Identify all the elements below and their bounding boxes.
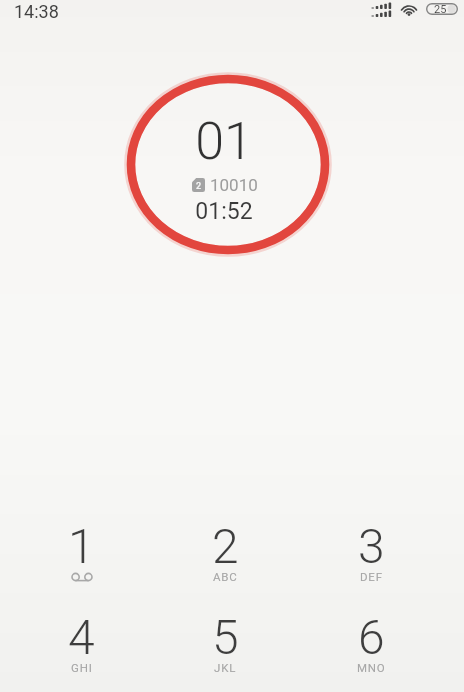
staticText: 2	[196, 181, 202, 192]
staticText: DEF	[360, 570, 383, 583]
button[interactable]: 6	[311, 601, 431, 679]
staticText: MNO	[357, 661, 386, 674]
staticText: GHI	[71, 661, 93, 674]
staticText: ABC	[213, 570, 238, 583]
staticText: 25	[434, 3, 447, 15]
staticText: 6	[358, 609, 385, 665]
staticText: 01:52	[195, 198, 253, 225]
staticText: 1	[68, 518, 95, 574]
staticText: 01	[195, 111, 253, 172]
staticText: 14:38	[14, 1, 59, 22]
staticText: 3	[358, 518, 385, 574]
button[interactable]: 2	[165, 510, 285, 588]
button[interactable]: 4	[21, 601, 141, 679]
staticText: JKL	[214, 661, 237, 674]
staticText: 4	[68, 609, 95, 665]
button[interactable]: 3	[311, 510, 431, 588]
button[interactable]: 5	[165, 601, 285, 679]
staticText: 5	[212, 609, 239, 665]
staticText: 10010	[210, 175, 258, 195]
staticText: 2	[212, 518, 239, 574]
button[interactable]: 1	[21, 510, 141, 588]
